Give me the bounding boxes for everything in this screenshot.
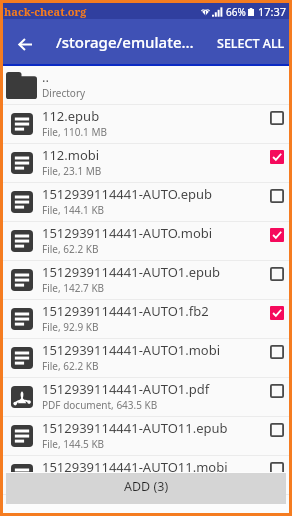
button[interactable]: Select 1512939114441-AUTO1.pdf <box>266 380 288 402</box>
button[interactable]: 112.epub <box>3 105 289 143</box>
staticText: 17:37 <box>258 4 287 19</box>
button[interactable]: 1512939114441-AUTO.epub <box>3 183 289 221</box>
staticText: File, 142.7 KB <box>42 281 105 295</box>
staticText: .. <box>42 68 49 86</box>
staticText: File, 23.1 MB <box>42 164 102 178</box>
button[interactable]: Select 1512939114441-AUTO.epub <box>266 185 288 207</box>
button[interactable]: Select 1512939114441-AUTO11.epub <box>266 419 288 441</box>
staticText: 1512939114441-AUTO11.epub <box>42 419 228 437</box>
button[interactable]: 1512939114441-AUTO1.mobi <box>3 339 289 377</box>
button[interactable]: Select 1512939114441-AUTO1.fb2 <box>266 302 288 324</box>
staticText: 1512939114441-AUTO.mobi <box>42 224 213 242</box>
staticText: File, 92.9 KB <box>42 320 99 334</box>
button[interactable]: 1512939114441-AUTO11.epub <box>3 417 289 455</box>
staticText: /storage/emulate… <box>56 32 194 52</box>
button[interactable]: 1512939114441-AUTO1.pdf <box>3 378 289 416</box>
staticText: 112.epub <box>42 107 100 125</box>
staticText: 1512939114441-AUTO1.epub <box>42 263 221 281</box>
button[interactable]: Select 1512939114441-AUTO1.mobi <box>266 341 288 363</box>
staticText: ADD (3) <box>124 478 169 495</box>
staticText: hack-cheat.org <box>4 4 87 19</box>
staticText: File, 110.1 MB <box>42 125 107 139</box>
button[interactable]: 1512939114441-AUTO11.mobi <box>3 456 289 494</box>
button[interactable]: ADD (3) <box>6 473 286 504</box>
staticText: 1512939114441-AUTO1.pdf <box>42 380 210 398</box>
button[interactable]: Select 112.epub <box>266 107 288 129</box>
staticText: 1512939114441-AUTO1.mobi <box>42 341 221 359</box>
staticText: File, 62.2 KB <box>42 359 99 373</box>
button[interactable]: 1512939114441-AUTO1.epub <box>3 261 289 299</box>
staticText: File, 144.5 KB <box>42 437 105 451</box>
staticText: File, 62.2 KB <box>42 242 99 256</box>
staticText: 1512939114441-AUTO1.fb2 <box>42 302 209 320</box>
button[interactable]: 112.mobi <box>3 144 289 182</box>
button[interactable]: 1512939114441-AUTO.mobi <box>3 222 289 260</box>
button[interactable]: SELECT ALL <box>211 27 289 60</box>
staticText: 112.mobi <box>42 146 100 164</box>
staticText: SELECT ALL <box>217 35 285 52</box>
button[interactable]: .. <box>3 66 289 104</box>
staticText: File, 144.1 KB <box>42 203 105 217</box>
button[interactable]: Select 1512939114441-AUTO11.mobi <box>266 458 288 480</box>
staticText: PDF document, 643.5 KB <box>42 398 158 412</box>
staticText: 1512939114441-AUTO11.mobi <box>42 458 228 476</box>
staticText: Directory <box>42 86 86 100</box>
button[interactable]: 1512939114441-AUTO1.fb2 <box>3 300 289 338</box>
button[interactable]: Back <box>3 22 43 62</box>
staticText: 1512939114441-AUTO.epub <box>42 185 213 203</box>
button[interactable]: Select 112.mobi <box>266 146 288 168</box>
button[interactable]: Select 1512939114441-AUTO.mobi <box>266 224 288 246</box>
staticText: 66% <box>226 5 246 19</box>
button[interactable]: Select 1512939114441-AUTO1.epub <box>266 263 288 285</box>
